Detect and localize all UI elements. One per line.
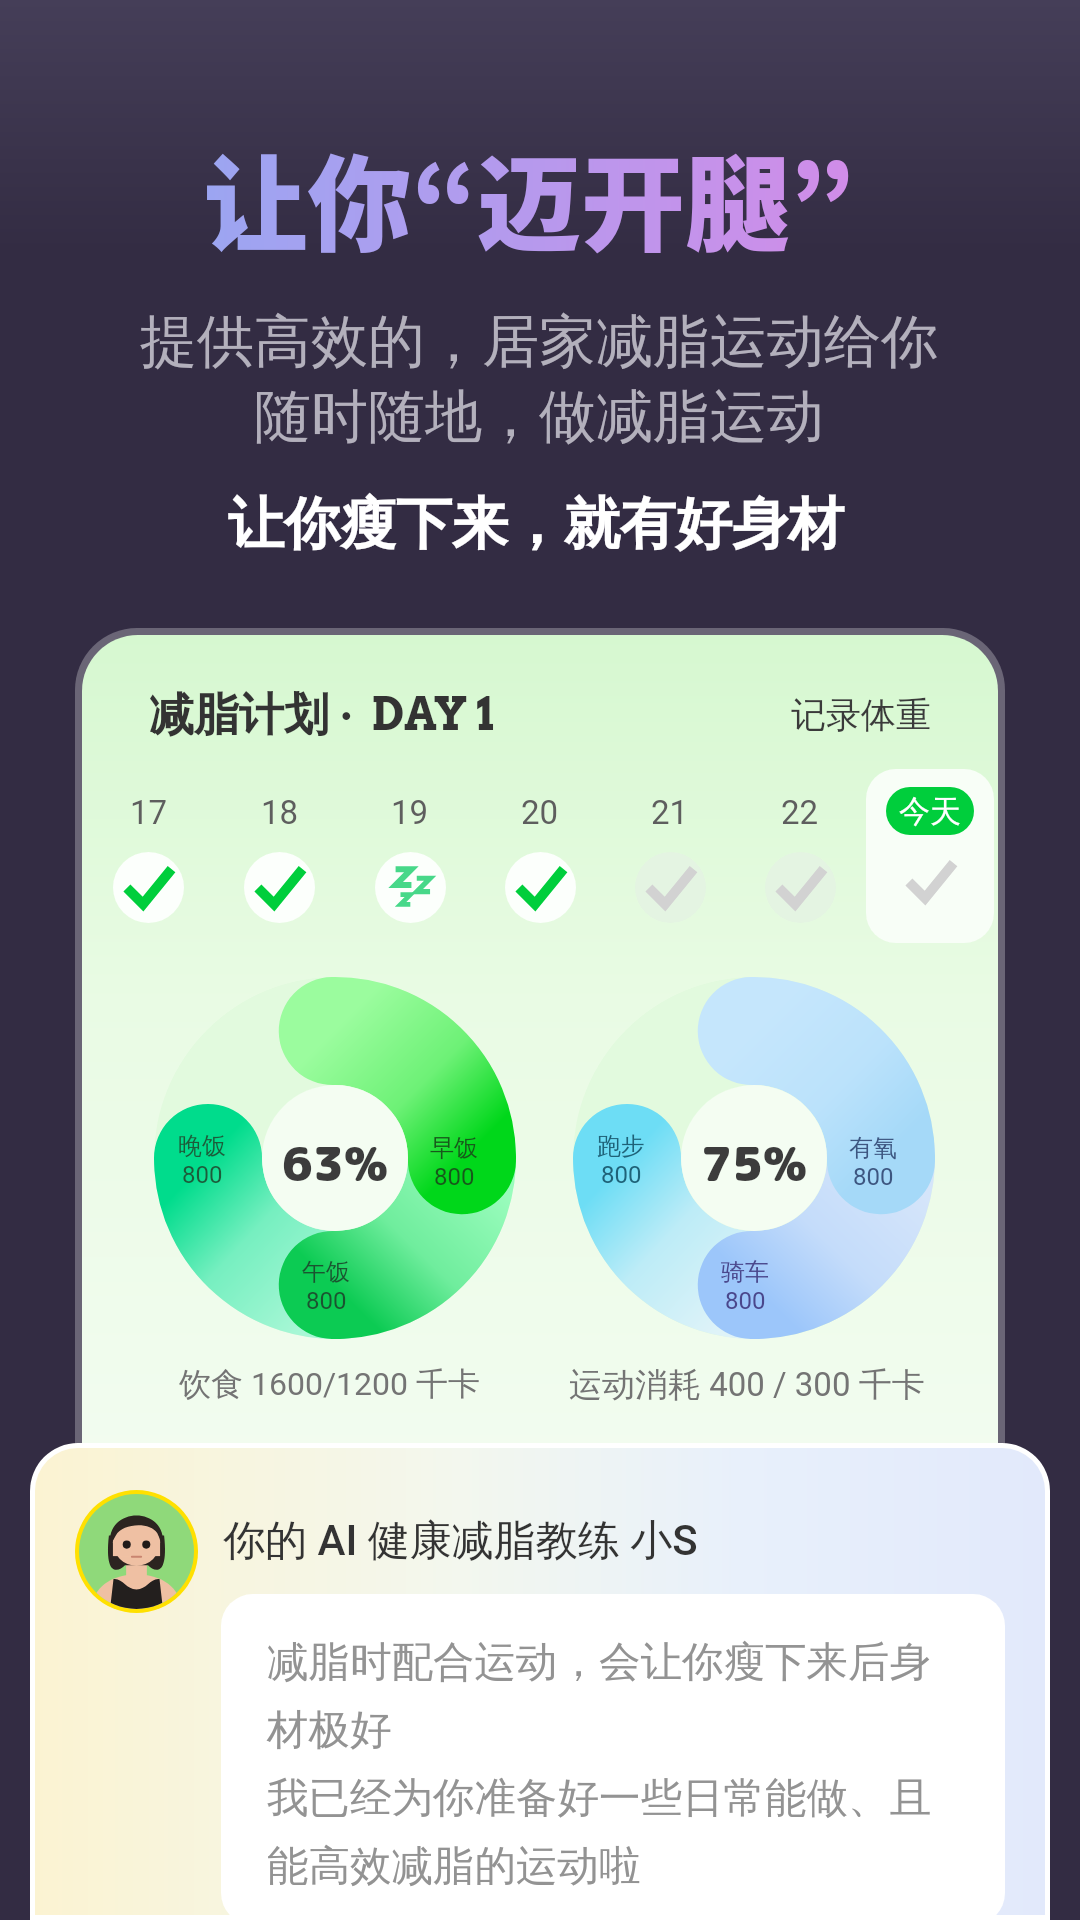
button[interactable]: 22 <box>735 769 865 947</box>
staticText: 17 <box>130 793 168 832</box>
staticText: 800 <box>306 1287 347 1315</box>
button[interactable]: 今天 <box>865 769 995 947</box>
staticText: 20 <box>521 793 559 832</box>
button[interactable]: 记录体重 <box>791 693 931 737</box>
staticText: 运动消耗 400 / 300 千卡 <box>569 1364 925 1406</box>
button[interactable]: 19 <box>345 769 475 947</box>
staticText: 饮食 1600/1200 千卡 <box>179 1364 480 1404</box>
staticText: 19 <box>391 793 429 832</box>
staticText: 减脂时配合运动，会让你瘦下来后身 材极好 我已经为你准备好一些日常能做、且 能高… <box>267 1636 931 1892</box>
staticText: 让你“迈开腿” <box>0 122 1069 273</box>
staticText: 21 <box>651 793 689 832</box>
staticText: 63% <box>282 1130 389 1196</box>
staticText: 800 <box>601 1161 642 1189</box>
staticText: 800 <box>853 1163 894 1191</box>
staticText: 800 <box>434 1163 475 1191</box>
staticText: 午饭 <box>302 1257 350 1287</box>
staticText: 今天 <box>899 792 961 831</box>
button[interactable]: 你的 AI 健康减脂教练 小S <box>223 1515 698 1568</box>
staticText: 提供高效的，居家减脂运动给你 随时随地，做减脂运动 <box>0 306 1079 453</box>
button[interactable]: 21 <box>605 769 735 947</box>
button[interactable]: 18 <box>214 769 345 947</box>
staticText: 让你瘦下来，就有好身材 <box>0 489 1076 560</box>
staticText: 骑车 <box>721 1257 769 1287</box>
other: AI coach avatar <box>79 1494 194 1609</box>
staticText: 18 <box>261 793 299 832</box>
staticText: 22 <box>781 793 819 832</box>
staticText: 800 <box>725 1287 766 1315</box>
staticText: 800 <box>182 1161 223 1189</box>
button[interactable]: 17 <box>83 769 214 947</box>
staticText: 早饭 <box>430 1133 478 1163</box>
button[interactable]: 20 <box>475 769 605 947</box>
staticText: 跑步 <box>597 1131 645 1161</box>
staticText: 晚饭 <box>178 1131 226 1161</box>
button[interactable]: 减脂计划 · DAY 1 <box>149 687 495 744</box>
staticText: 75% <box>701 1130 808 1196</box>
staticText: 有氧 <box>849 1133 897 1163</box>
